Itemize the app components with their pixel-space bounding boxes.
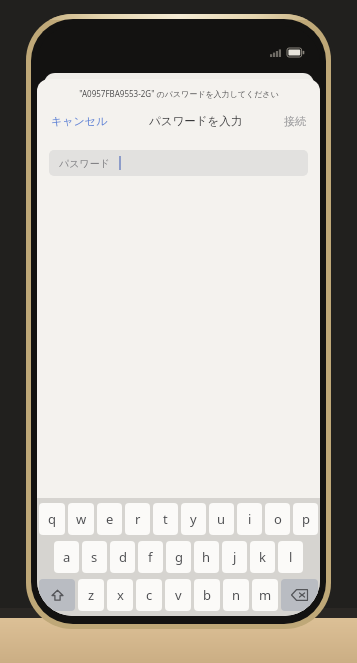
button[interactable]: w: [68, 503, 94, 535]
staticText: w: [76, 510, 87, 528]
staticText: y: [190, 510, 197, 528]
button[interactable]: z: [78, 579, 104, 611]
staticText: d: [119, 548, 127, 566]
staticText: p: [302, 510, 310, 528]
staticText: 接続: [284, 114, 306, 128]
button[interactable]: f: [138, 541, 163, 573]
staticText: o: [274, 510, 282, 528]
button[interactable]: q: [39, 503, 65, 535]
staticText: s: [91, 548, 98, 566]
button[interactable]: 接続: [282, 110, 308, 132]
button[interactable]: n: [223, 579, 249, 611]
staticText: m: [259, 586, 272, 604]
button[interactable]: r: [125, 503, 150, 535]
staticText: r: [135, 510, 141, 528]
staticText: i: [248, 510, 252, 528]
button[interactable]: s: [82, 541, 107, 573]
button[interactable]: v: [165, 579, 191, 611]
button[interactable]: p: [293, 503, 318, 535]
button[interactable]: o: [265, 503, 290, 535]
staticText: キャンセル: [51, 114, 108, 128]
staticText: e: [106, 510, 114, 528]
staticText: k: [259, 548, 266, 566]
staticText: x: [117, 586, 124, 604]
button[interactable]: x: [107, 579, 133, 611]
staticText: パスワードを入力: [149, 114, 243, 128]
button[interactable]: g: [166, 541, 191, 573]
staticText: l: [289, 548, 293, 566]
staticText: b: [203, 586, 211, 604]
staticText: v: [175, 586, 182, 604]
button[interactable]: l: [278, 541, 303, 573]
button[interactable]: k: [250, 541, 275, 573]
button[interactable]: パスワード: [49, 150, 308, 176]
staticText: t: [163, 510, 168, 528]
staticText: z: [88, 586, 95, 604]
staticText: a: [63, 548, 71, 566]
staticText: q: [48, 510, 56, 528]
staticText: g: [175, 548, 183, 566]
button[interactable]: m: [252, 579, 278, 611]
staticText: パスワード: [59, 157, 110, 170]
button[interactable]: Shift: [39, 579, 75, 611]
staticText: f: [148, 548, 153, 566]
button[interactable]: e: [97, 503, 122, 535]
staticText: "A0957FBA9553-2G" のパスワードを入力してください: [79, 88, 279, 99]
button[interactable]: キャンセル: [49, 110, 110, 132]
button[interactable]: u: [209, 503, 234, 535]
button[interactable]: b: [194, 579, 220, 611]
staticText: n: [232, 586, 241, 604]
button[interactable]: h: [194, 541, 219, 573]
button[interactable]: c: [136, 579, 162, 611]
button[interactable]: Backspace: [281, 579, 318, 611]
staticText: c: [146, 586, 153, 604]
button[interactable]: y: [181, 503, 206, 535]
button[interactable]: t: [153, 503, 178, 535]
button[interactable]: i: [237, 503, 262, 535]
button[interactable]: a: [54, 541, 79, 573]
button[interactable]: d: [110, 541, 135, 573]
staticText: u: [217, 510, 226, 528]
button[interactable]: j: [222, 541, 247, 573]
staticText: h: [202, 548, 211, 566]
staticText: j: [233, 548, 237, 566]
